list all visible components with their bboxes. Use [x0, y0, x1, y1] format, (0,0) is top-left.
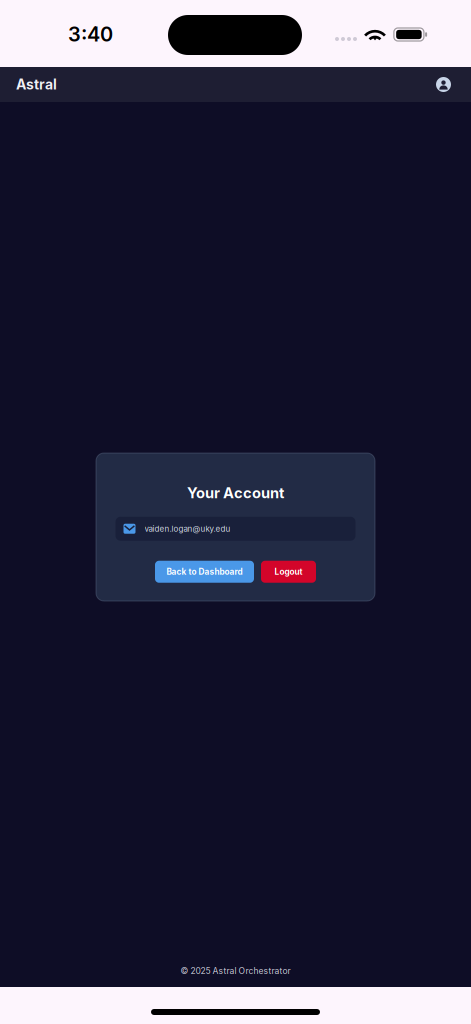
staticText: Back to Dashboard [166, 567, 242, 577]
button[interactable]: Back to Dashboard [155, 561, 254, 583]
staticText: Logout [274, 567, 302, 577]
button[interactable]: Account [436, 77, 471, 92]
button[interactable]: Logout [261, 561, 316, 583]
staticText: Astral [16, 76, 57, 93]
staticText: 3:40 [68, 22, 113, 46]
staticText: Your Account [187, 484, 284, 502]
staticText: © 2025 Astral Orchestrator [180, 966, 290, 976]
staticText: vaiden.logan@uky.edu [144, 524, 230, 534]
